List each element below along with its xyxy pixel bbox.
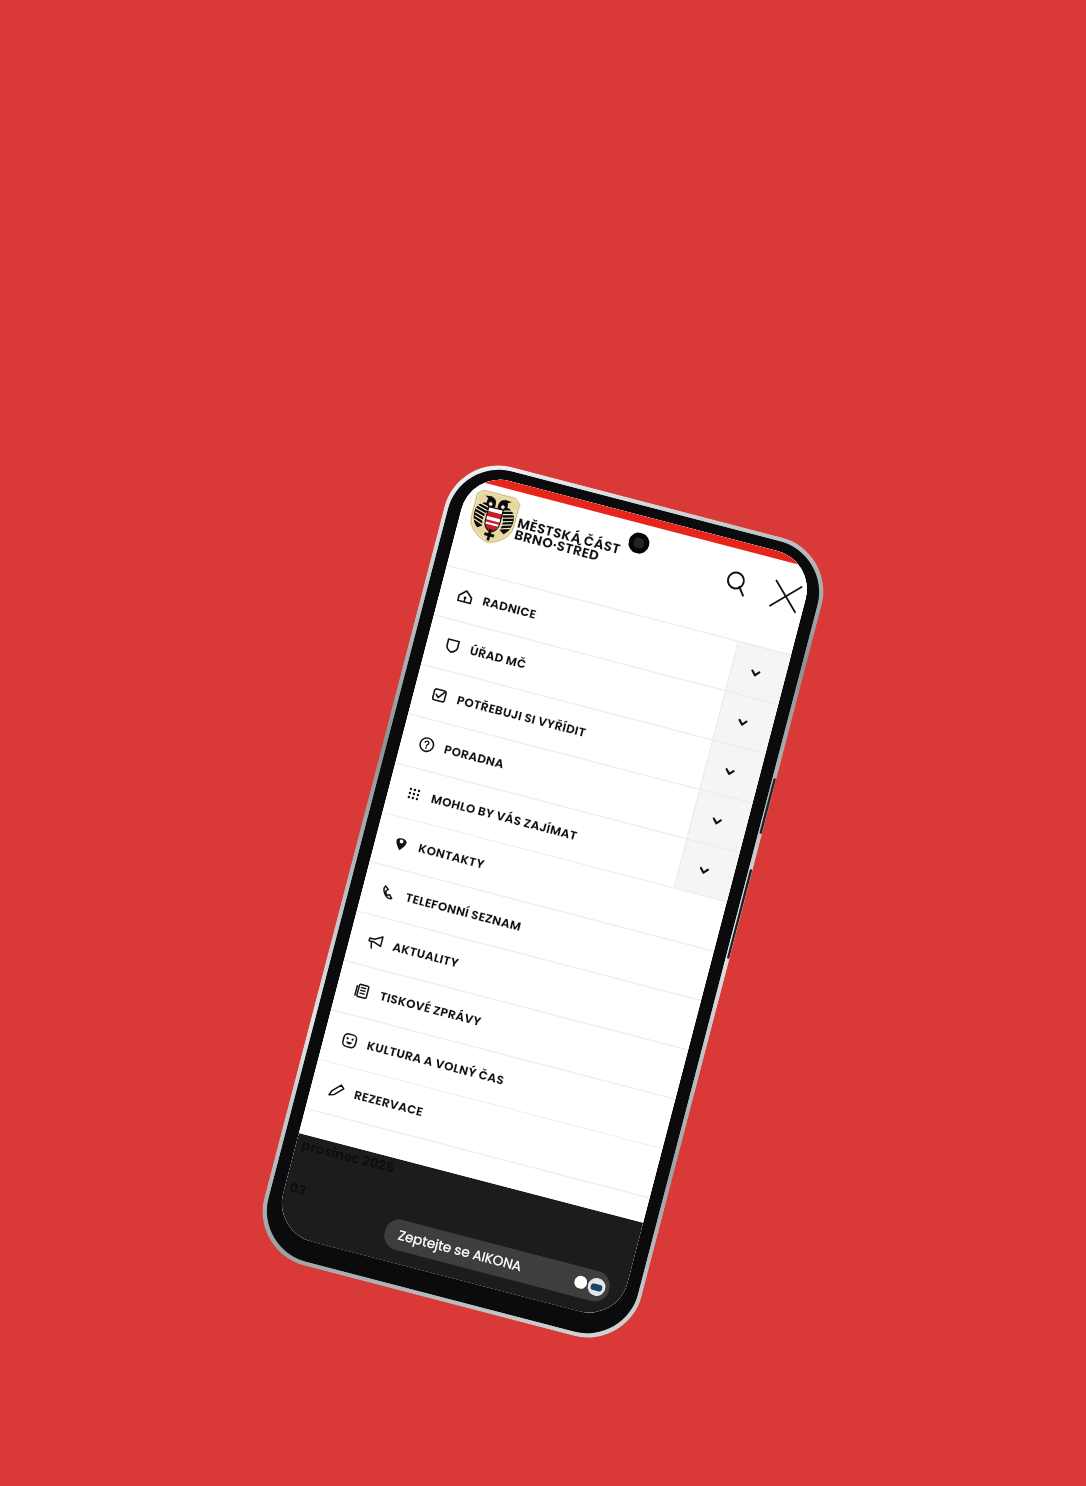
staticText: ÚŘAD MČ [468,642,528,673]
button[interactable]: Expand [674,838,740,901]
button[interactable]: AKTUALITY [344,910,701,1049]
staticText: MOHLO BY VÁS ZAJÍMAT [429,790,580,844]
button[interactable]: TELEFONNÍ SEZNAM [357,861,714,1000]
button[interactable]: PORADNA [395,713,753,852]
staticText: 04 [427,1227,449,1249]
staticText: KONTAKTY [416,839,487,873]
button[interactable]: Expand [712,690,778,753]
button[interactable]: RADNICE [434,565,791,704]
button[interactable]: MOHLO BY VÁS ZAJÍMAT [382,762,740,901]
button[interactable]: Zeptejte se AIKONA [381,1216,613,1305]
staticText: 03 [288,1178,309,1199]
staticText: TISKOVÉ ZPRÁVY [378,987,484,1030]
button[interactable]: Close menu [769,579,803,613]
button[interactable]: ÚŘAD MČ [421,614,778,753]
staticText: REZERVACE [352,1086,425,1120]
button[interactable]: REZERVACE [305,1058,663,1197]
button[interactable]: Expand [725,641,791,704]
staticText: Zeptejte se AIKONA [396,1226,525,1276]
staticText: POTŘEBUJI SI VYŘÍDIT [455,691,588,741]
staticText: MĚSTSKÁ ČÁST BRNO·STŘED [512,514,624,570]
button[interactable]: TISKOVÉ ZPRÁVY [331,960,688,1099]
staticText: KULTURA A VOLNÝ ČAS [365,1037,507,1089]
staticText: RADNICE [481,592,538,623]
button[interactable]: KULTURA A VOLNÝ ČAS [318,1009,676,1148]
button[interactable]: POTŘEBUJI SI VYŘÍDIT [408,664,766,803]
button[interactable]: Search [720,567,754,601]
staticText: PORADNA [442,740,506,773]
staticText: AKTUALITY [391,938,461,971]
button[interactable]: Expand [699,739,766,803]
button[interactable]: KONTAKTY [370,812,727,951]
staticText: prosinec 2025 [299,1135,397,1178]
button[interactable]: Expand [687,789,753,852]
staticText: TELEFONNÍ SEZNAM [404,888,524,935]
